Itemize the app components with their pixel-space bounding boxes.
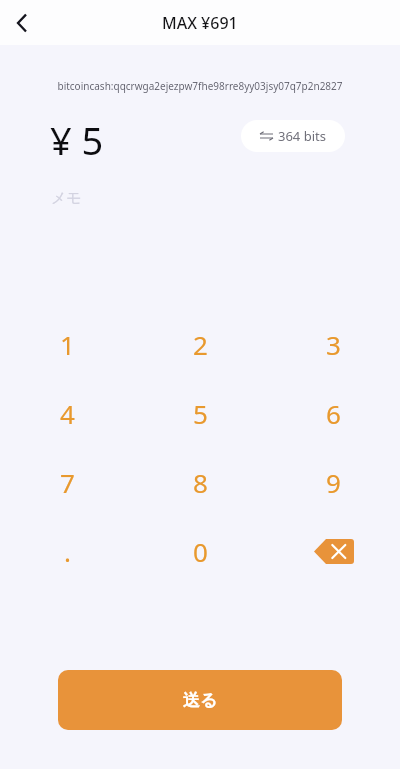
staticText: 0 — [193, 534, 208, 569]
staticText: 9 — [326, 465, 341, 500]
staticText: 364 bits — [278, 127, 326, 145]
staticText: 3 — [326, 327, 341, 362]
staticText: 6 — [326, 396, 341, 431]
staticText: 1 — [60, 327, 75, 362]
button[interactable]: 1 — [0, 310, 134, 379]
button[interactable]: 6 — [267, 379, 400, 448]
button[interactable]: 0 — [134, 517, 267, 586]
button[interactable]: 7 — [0, 448, 134, 517]
staticText: . — [64, 534, 71, 569]
staticText: メモ — [51, 189, 82, 208]
staticText: bitcoincash:qqcrwga2ejezpw7fhe98rre8yy03… — [16, 79, 384, 93]
button[interactable]: 3 — [267, 310, 400, 379]
button[interactable]: 4 — [0, 379, 134, 448]
staticText: MAX ¥691 — [162, 12, 238, 34]
button[interactable]: Back — [0, 1, 44, 45]
staticText: 7 — [60, 465, 75, 500]
button[interactable]: 2 — [134, 310, 267, 379]
staticText: 5 — [193, 396, 208, 431]
button[interactable]: 9 — [267, 448, 400, 517]
button[interactable]: 送る — [58, 670, 342, 730]
staticText: 4 — [60, 396, 75, 431]
button[interactable]: 364 bits — [241, 120, 345, 152]
button[interactable]: . — [0, 517, 134, 586]
staticText: ¥ 5 — [50, 114, 104, 158]
button[interactable]: 8 — [134, 448, 267, 517]
staticText: 8 — [193, 465, 208, 500]
button[interactable]: 5 — [134, 379, 267, 448]
staticText: 2 — [193, 327, 208, 362]
staticText: 送る — [183, 690, 218, 711]
button[interactable]: Backspace — [267, 517, 400, 586]
